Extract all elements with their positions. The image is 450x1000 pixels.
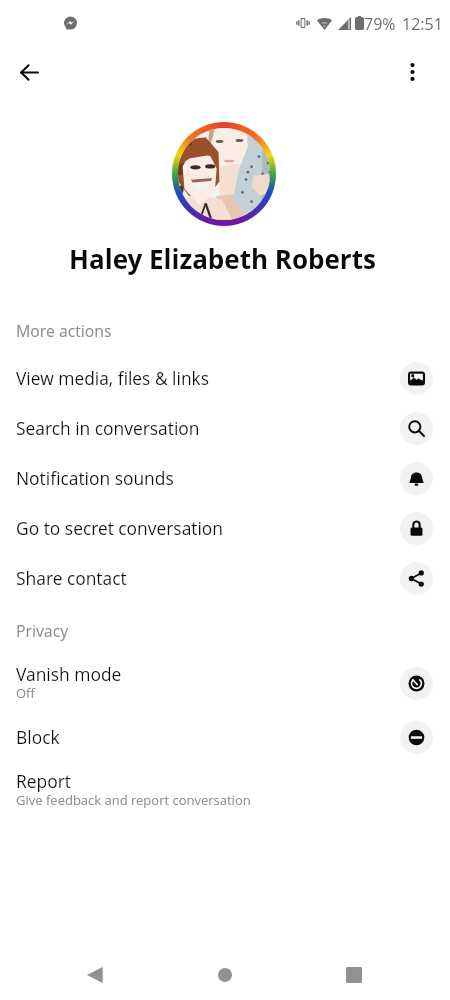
button[interactable]: Vanish mode	[0, 652, 450, 714]
staticText: 79%	[364, 13, 396, 35]
other: Share contact	[408, 570, 425, 587]
button[interactable]: Report	[0, 759, 450, 821]
button[interactable]: Back	[7, 50, 51, 94]
other: Vanish mode	[408, 675, 425, 692]
other: View media, files and links	[408, 370, 425, 387]
other: Search in conversation	[408, 420, 425, 437]
staticText: Haley Elizabeth Roberts	[69, 241, 376, 276]
staticText: More actions	[16, 320, 112, 342]
staticText: Privacy	[16, 620, 69, 642]
button[interactable]: Back	[55, 951, 103, 999]
button[interactable]: Share contact	[0, 553, 450, 603]
staticText: Off	[16, 684, 35, 702]
staticText: Search in conversation	[16, 416, 400, 440]
button[interactable]: More options	[390, 50, 434, 94]
button[interactable]: Go to secret conversation	[0, 503, 450, 553]
staticText: Vanish mode	[16, 662, 122, 686]
button[interactable]: View media, files & links	[0, 353, 450, 403]
other: Go to secret conversation	[408, 520, 425, 537]
staticText: Share contact	[16, 566, 400, 590]
staticText: Block	[16, 725, 400, 749]
button[interactable]: Search in conversation	[0, 403, 450, 453]
other: Notification sounds	[408, 470, 425, 487]
staticText: View media, files & links	[16, 366, 400, 390]
other: Block	[408, 729, 425, 746]
staticText: Give feedback and report conversation	[16, 791, 251, 809]
staticText: Notification sounds	[16, 466, 400, 490]
staticText: 12:51	[402, 13, 443, 35]
staticText: Report	[16, 769, 71, 793]
staticText: Go to secret conversation	[16, 516, 400, 540]
button[interactable]: Notification sounds	[0, 453, 450, 503]
button[interactable]: Block	[0, 712, 450, 762]
